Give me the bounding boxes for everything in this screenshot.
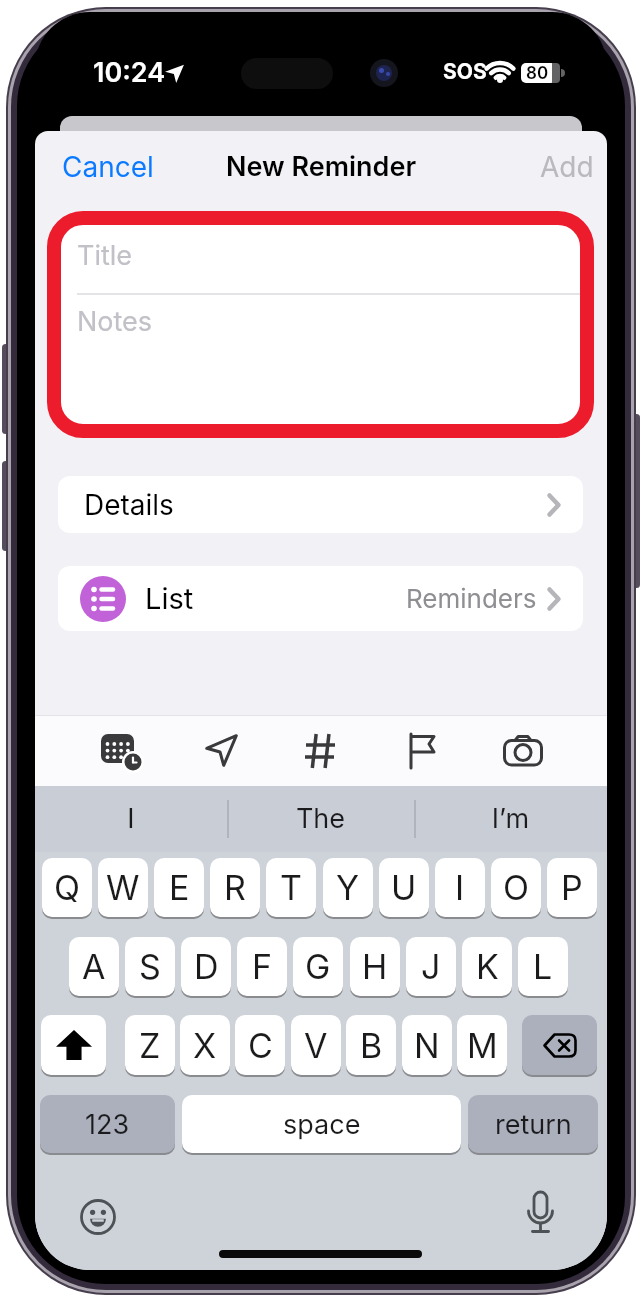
staticText: space xyxy=(283,1108,361,1141)
button[interactable]: R xyxy=(210,858,260,917)
staticText: 80 xyxy=(526,63,549,84)
staticText: New Reminder xyxy=(35,150,607,183)
button[interactable]: F xyxy=(237,937,287,996)
button[interactable]: O xyxy=(491,858,541,917)
button[interactable]: List xyxy=(58,566,583,631)
staticText: I xyxy=(455,867,465,908)
staticText: Details xyxy=(84,488,174,522)
staticText: U xyxy=(391,867,417,908)
button[interactable]: return xyxy=(468,1095,598,1153)
staticText: T xyxy=(280,867,302,908)
button[interactable]: A xyxy=(69,937,119,996)
staticText: F xyxy=(252,946,273,987)
button[interactable]: Q xyxy=(42,858,92,917)
button[interactable]: P xyxy=(547,858,597,917)
button[interactable]: S xyxy=(125,937,175,996)
staticText: Z xyxy=(139,1025,161,1066)
button[interactable]: Z xyxy=(125,1015,175,1075)
staticText: R xyxy=(224,867,246,908)
staticText: The xyxy=(227,802,414,835)
staticText: Q xyxy=(54,867,80,908)
button[interactable]: Y xyxy=(323,858,373,917)
staticText: B xyxy=(360,1025,383,1066)
staticText: S xyxy=(139,946,161,987)
button[interactable]: Add xyxy=(540,150,594,184)
staticText: H xyxy=(362,946,388,987)
button[interactable]: L xyxy=(518,937,568,996)
button[interactable] xyxy=(503,735,543,767)
button[interactable]: G xyxy=(293,937,343,996)
staticText: SOS xyxy=(443,59,487,84)
staticText: Reminders xyxy=(406,583,537,614)
staticText: D xyxy=(194,946,219,987)
button[interactable]: E xyxy=(154,858,204,917)
staticText: Title xyxy=(77,239,133,272)
button[interactable]: J xyxy=(406,937,456,996)
staticText: V xyxy=(304,1025,328,1066)
button[interactable]: B xyxy=(346,1015,396,1075)
button[interactable]: space xyxy=(182,1095,461,1153)
button[interactable]: K xyxy=(462,937,512,996)
staticText: C xyxy=(248,1025,273,1066)
staticText: X xyxy=(193,1025,217,1066)
button[interactable] xyxy=(304,733,336,769)
staticText: I xyxy=(35,802,227,835)
button[interactable]: 123 xyxy=(40,1095,175,1153)
staticText: K xyxy=(476,946,499,987)
staticText: P xyxy=(561,867,583,908)
button[interactable] xyxy=(41,1015,106,1075)
staticText: 123 xyxy=(85,1108,130,1141)
button[interactable] xyxy=(526,1191,555,1239)
staticText: Cancel xyxy=(62,150,154,184)
button[interactable] xyxy=(80,1199,116,1235)
button[interactable] xyxy=(203,732,240,769)
staticText: J xyxy=(421,946,441,987)
button[interactable]: I xyxy=(435,858,485,917)
button[interactable]: N xyxy=(402,1015,452,1075)
staticText: I’m xyxy=(414,802,607,835)
staticText: L xyxy=(533,946,553,987)
staticText: return xyxy=(495,1108,572,1141)
staticText: Notes xyxy=(77,305,153,338)
button[interactable]: V xyxy=(291,1015,341,1075)
button[interactable]: U xyxy=(379,858,429,917)
staticText: O xyxy=(503,867,529,908)
staticText: 10:24 xyxy=(93,56,166,89)
button[interactable]: Cancel xyxy=(62,150,154,184)
staticText: Y xyxy=(336,867,360,908)
staticText: List xyxy=(145,581,194,616)
staticText: E xyxy=(169,867,190,908)
button[interactable]: Details xyxy=(58,476,583,533)
button[interactable]: X xyxy=(180,1015,230,1075)
button[interactable]: H xyxy=(350,937,400,996)
button[interactable]: D xyxy=(181,937,231,996)
button[interactable] xyxy=(100,731,144,773)
button[interactable] xyxy=(407,732,439,769)
button[interactable]: M xyxy=(457,1015,507,1075)
button[interactable]: T xyxy=(266,858,316,917)
staticText: A xyxy=(82,946,106,987)
staticText: W xyxy=(106,867,140,908)
button[interactable] xyxy=(522,1015,597,1075)
button[interactable]: W xyxy=(98,858,148,917)
staticText: Add xyxy=(540,150,594,184)
staticText: M xyxy=(467,1025,498,1066)
staticText: G xyxy=(305,946,331,987)
button[interactable]: C xyxy=(235,1015,285,1075)
staticText: N xyxy=(414,1025,440,1066)
